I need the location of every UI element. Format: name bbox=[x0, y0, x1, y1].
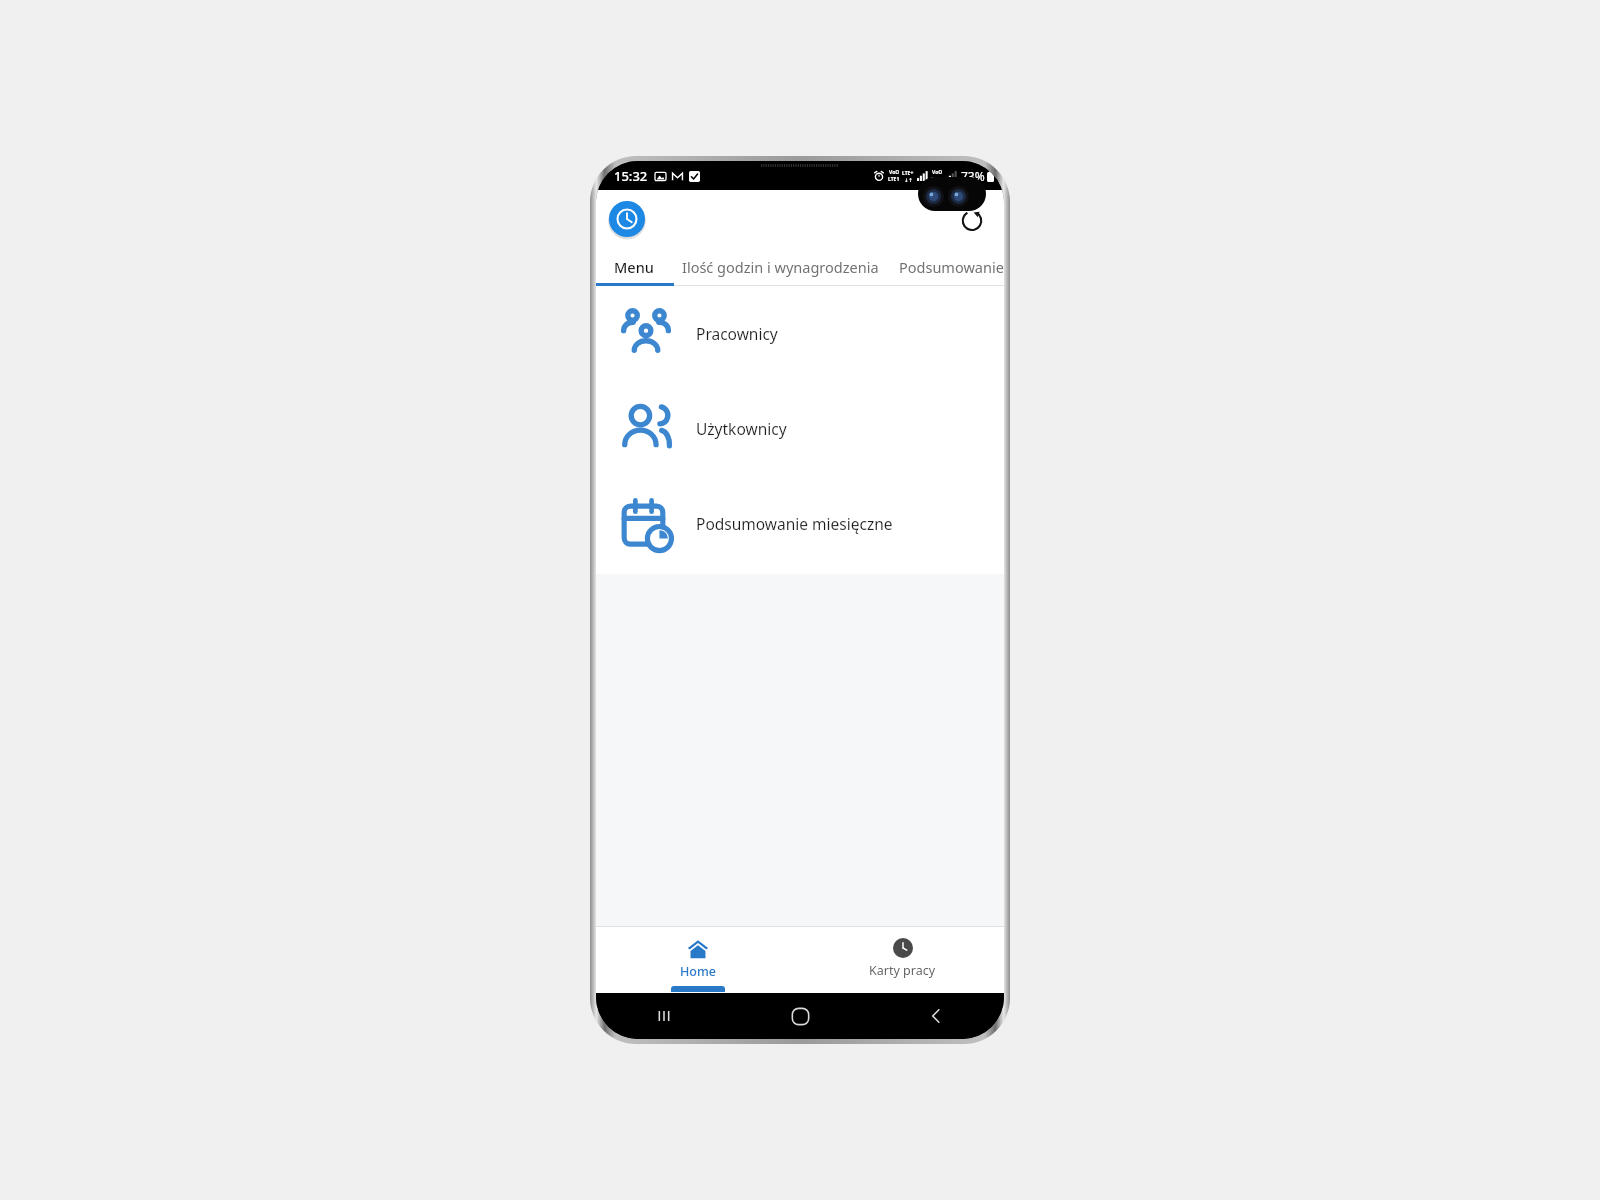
button[interactable]: Menu bbox=[596, 248, 672, 286]
staticText: Menu bbox=[614, 257, 654, 277]
button[interactable]: Recent apps bbox=[596, 993, 732, 1039]
staticText: VoO bbox=[932, 169, 943, 176]
button[interactable]: Ilość godzin i wynagrodzenia bbox=[672, 248, 889, 286]
button[interactable]: Home bbox=[732, 993, 868, 1039]
button[interactable]: Podsumowanie bbox=[889, 248, 1004, 286]
button[interactable]: Podsumowanie miesięczne bbox=[596, 476, 1004, 571]
staticText: ↓↑ bbox=[904, 177, 913, 183]
staticText: Home bbox=[680, 963, 717, 980]
button[interactable]: Refresh bbox=[954, 201, 990, 237]
button[interactable]: Karty pracy bbox=[800, 927, 1004, 993]
button[interactable]: Użytkownicy bbox=[596, 381, 1004, 476]
button[interactable]: App logo bbox=[608, 200, 646, 238]
button[interactable]: Home bbox=[596, 927, 800, 993]
button[interactable]: Pracownicy bbox=[596, 286, 1004, 381]
staticText: Ilość godzin i wynagrodzenia bbox=[682, 257, 879, 277]
staticText: VoO bbox=[889, 169, 900, 176]
staticText: LTE1 bbox=[888, 176, 900, 183]
staticText: Podsumowanie bbox=[899, 257, 1004, 277]
staticText: Karty pracy bbox=[869, 962, 936, 979]
staticText: 73% bbox=[961, 168, 985, 184]
staticText: Pracownicy bbox=[696, 323, 778, 344]
button[interactable]: Back bbox=[868, 993, 1004, 1039]
staticText: LTE+ bbox=[931, 176, 943, 183]
staticText: LTE+ bbox=[902, 170, 914, 177]
staticText: 15:32 bbox=[614, 167, 648, 185]
staticText: Użytkownicy bbox=[696, 418, 787, 439]
staticText: Podsumowanie miesięczne bbox=[696, 513, 893, 534]
